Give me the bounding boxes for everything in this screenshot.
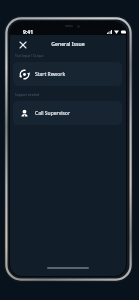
button[interactable]: Call Supervisor xyxy=(13,101,122,125)
staticText: 9:41 xyxy=(23,29,33,36)
staticText: Tool Input / Output xyxy=(15,54,44,58)
staticText: Support needed xyxy=(15,93,40,97)
button[interactable]: Start Rework xyxy=(13,62,122,86)
staticText: General Issue xyxy=(51,41,85,48)
button[interactable]: Close xyxy=(17,39,29,51)
staticText: Call Supervisor xyxy=(35,110,70,117)
staticText: Start Rework xyxy=(35,71,66,78)
